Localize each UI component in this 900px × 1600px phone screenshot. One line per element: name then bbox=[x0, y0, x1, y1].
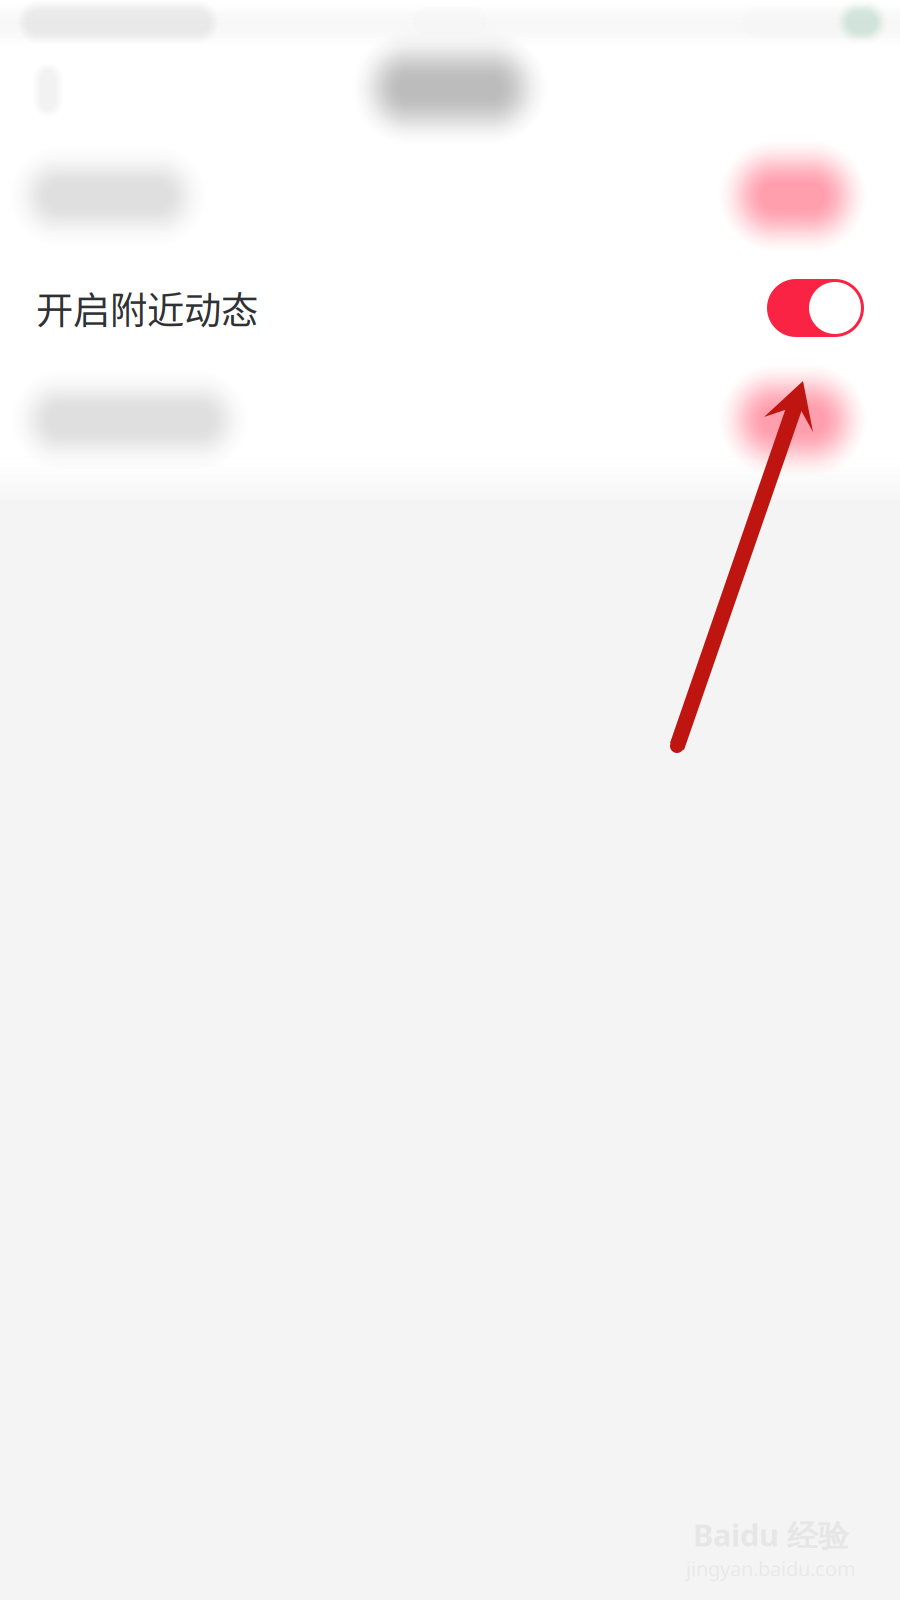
button[interactable] bbox=[0, 140, 900, 252]
staticText: Baidu 经验 bbox=[693, 1514, 849, 1555]
button[interactable] bbox=[0, 364, 900, 476]
staticText: 开启附近动态 bbox=[36, 281, 258, 335]
button[interactable]: Back bbox=[0, 48, 96, 132]
button[interactable]: 开启附近动态 bbox=[0, 252, 900, 364]
staticText: jingyan.baidu.com bbox=[686, 1555, 856, 1582]
